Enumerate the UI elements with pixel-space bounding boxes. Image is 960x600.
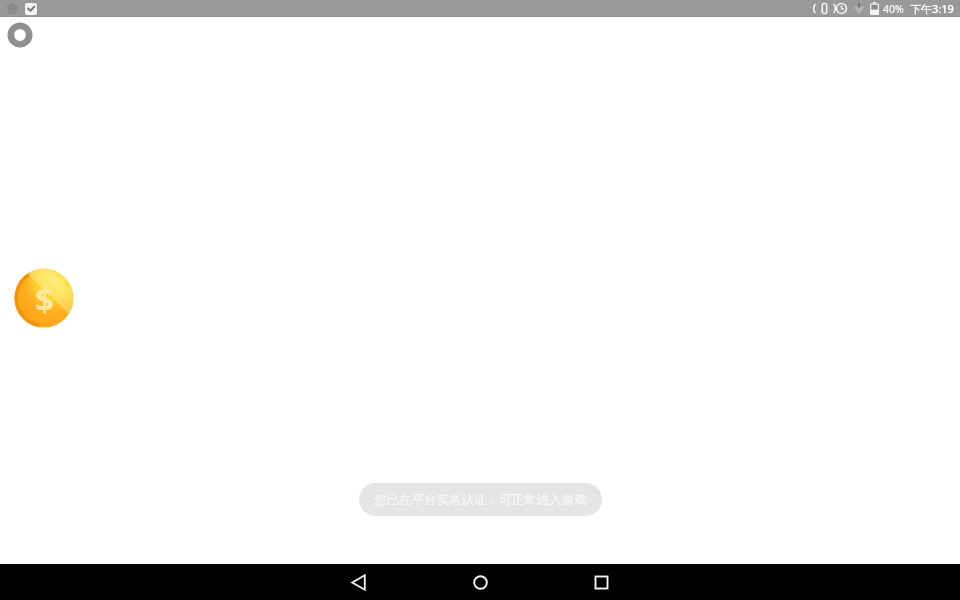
staticText: 下午3:19 [910,1,954,16]
staticText: 您已在平台实名认证，可正常进入游戏 [374,492,587,508]
staticText: $ [35,277,54,322]
button[interactable]: $ [14,268,74,328]
button[interactable] [6,21,34,49]
button[interactable] [581,564,621,600]
staticText: 40% [883,2,904,16]
button[interactable] [460,564,500,600]
button[interactable] [338,564,378,600]
